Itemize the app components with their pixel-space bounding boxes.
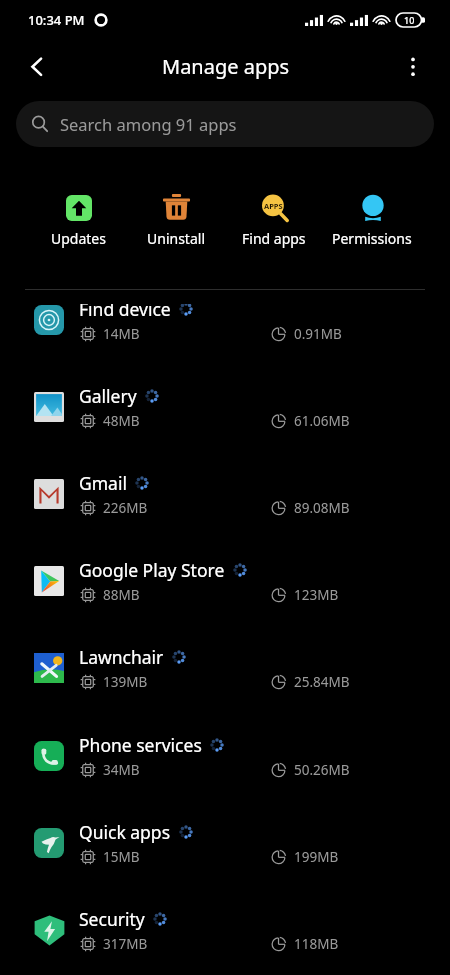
staticText: Lawnchair — [79, 645, 164, 669]
staticText: Uninstall — [147, 229, 205, 248]
button[interactable]: Google Play Store — [0, 551, 450, 638]
button[interactable]: Back — [17, 47, 57, 87]
staticText: Google Play Store — [79, 558, 225, 582]
staticText: 15MB — [103, 848, 140, 866]
button[interactable]: Security — [0, 900, 450, 975]
staticText: Gallery — [79, 384, 137, 408]
staticText: 0.91MB — [294, 325, 342, 343]
staticText: Permissions — [332, 229, 412, 248]
button[interactable]: Find device — [0, 304, 450, 377]
staticText: 89.08MB — [294, 499, 350, 517]
button[interactable]: APPS — [225, 190, 323, 252]
staticText: 139MB — [103, 673, 148, 691]
button[interactable]: More options — [393, 47, 433, 87]
staticText: 48MB — [103, 412, 140, 430]
staticText: 199MB — [294, 848, 339, 866]
staticText: Security — [79, 907, 145, 931]
staticText: 25.84MB — [294, 673, 350, 691]
staticText: 118MB — [294, 935, 339, 953]
staticText: 61.06MB — [294, 412, 350, 430]
button[interactable]: Permissions — [323, 190, 421, 252]
staticText: 226MB — [103, 499, 148, 517]
button[interactable]: Gmail — [0, 464, 450, 551]
button[interactable]: Quick apps — [0, 813, 450, 900]
staticText: 50.26MB — [294, 761, 350, 779]
staticText: APPS — [264, 201, 283, 211]
staticText: Phone services — [79, 733, 202, 757]
staticText: 34MB — [103, 761, 140, 779]
staticText: Manage apps — [162, 53, 290, 80]
staticText: 14MB — [103, 325, 140, 343]
staticText: 10 — [404, 14, 415, 26]
button[interactable]: Search among 91 apps — [16, 101, 434, 147]
button[interactable]: Phone services — [0, 726, 450, 813]
button[interactable]: Updates — [29, 190, 127, 252]
staticText: Quick apps — [79, 820, 171, 844]
staticText: 317MB — [103, 935, 148, 953]
button[interactable]: Lawnchair — [0, 638, 450, 725]
staticText: Gmail — [79, 471, 127, 495]
staticText: 123MB — [294, 586, 339, 604]
staticText: Search among 91 apps — [60, 113, 237, 135]
button[interactable]: Gallery — [0, 377, 450, 464]
staticText: Find apps — [242, 229, 306, 248]
staticText: Find device — [79, 304, 171, 321]
staticText: Updates — [51, 229, 106, 248]
staticText: 88MB — [103, 586, 140, 604]
button[interactable]: Uninstall — [127, 190, 225, 252]
staticText: 10:34 PM — [28, 11, 85, 29]
